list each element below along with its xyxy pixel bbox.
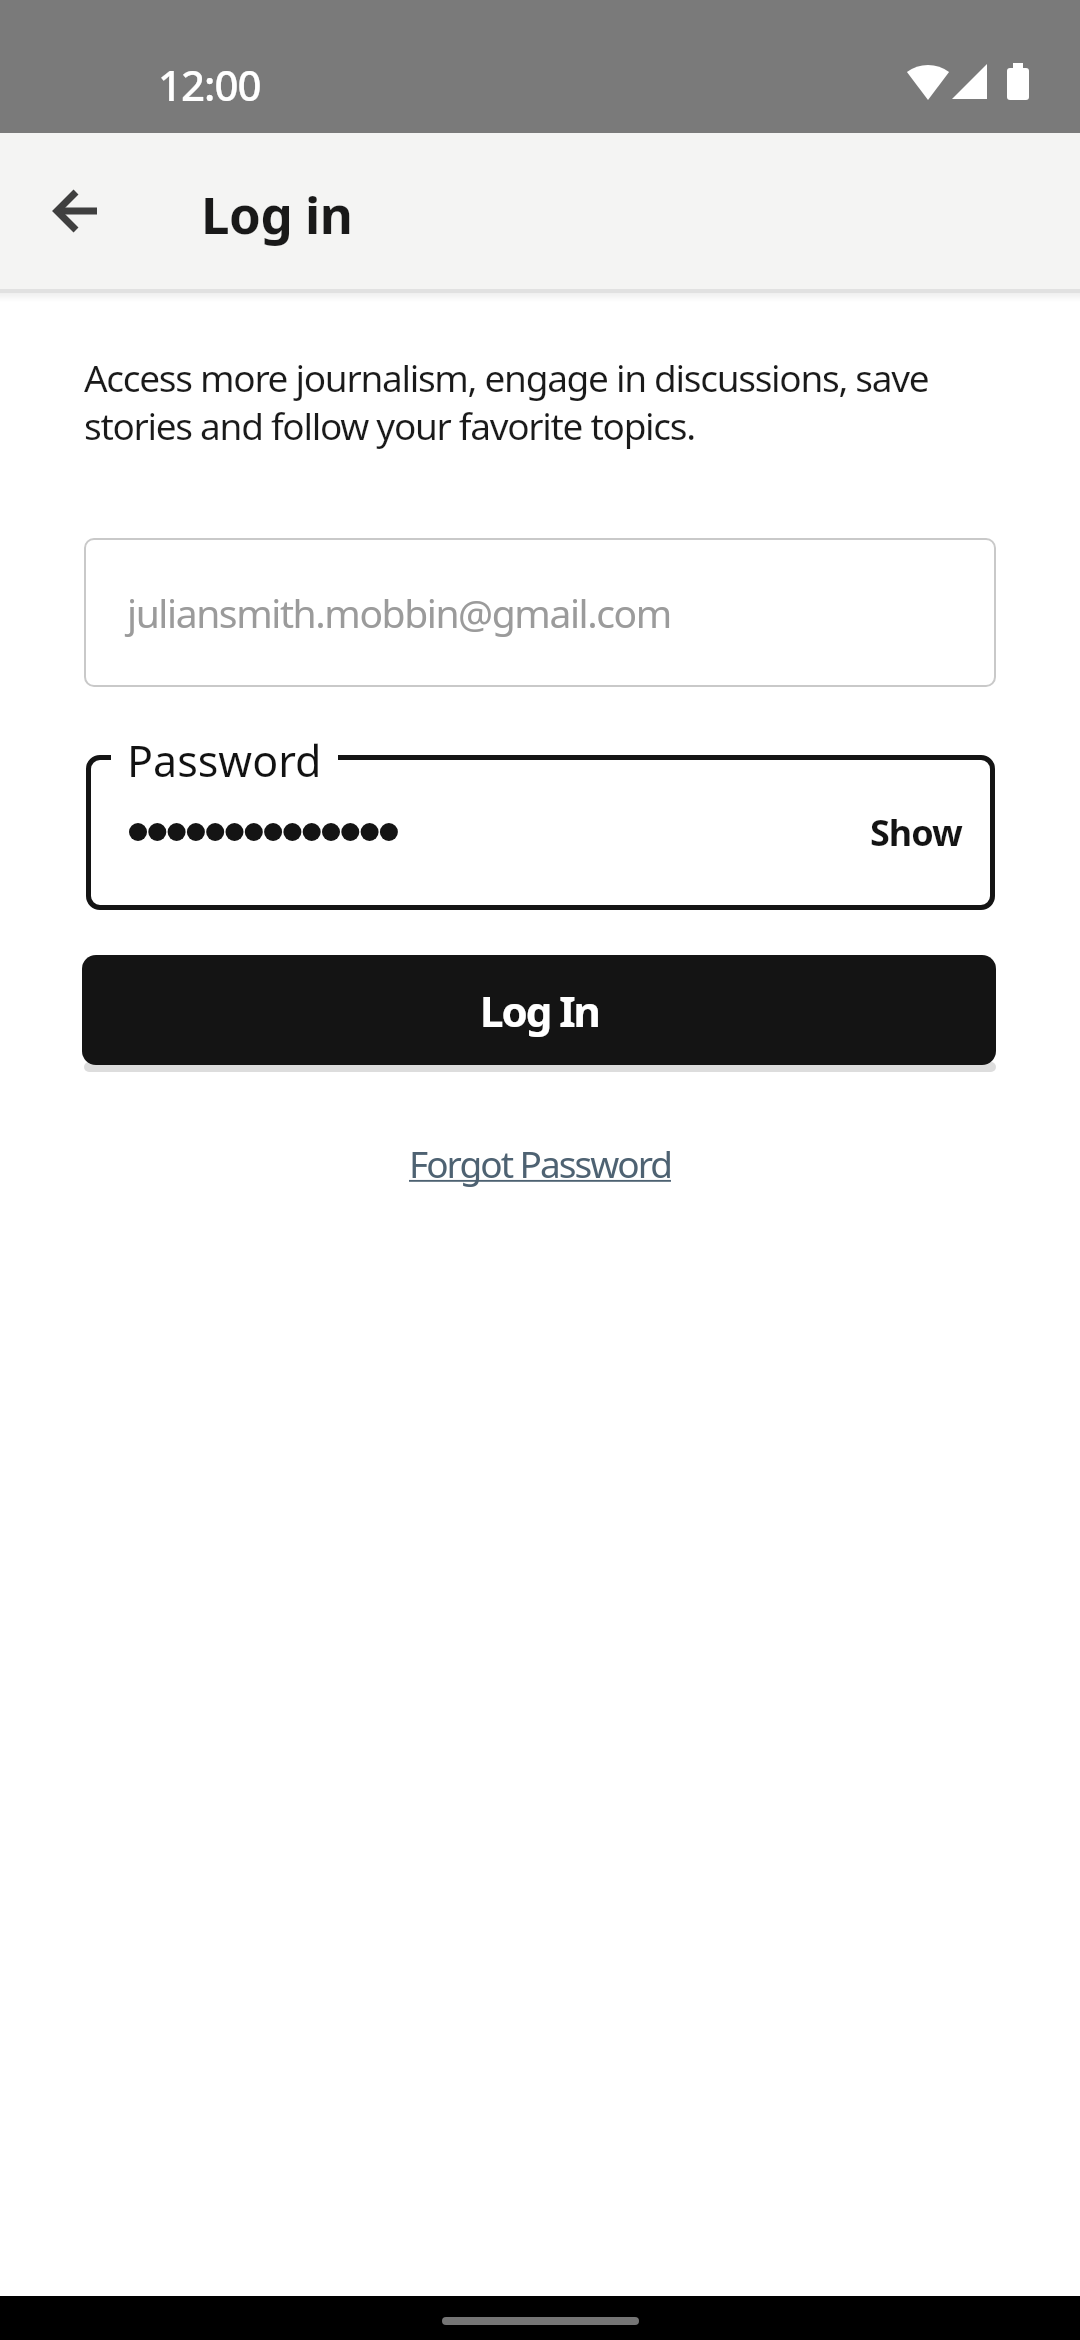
staticText: Show [870,808,962,857]
staticText: Access more journalism, engage in discus… [84,352,929,451]
staticText: Password [127,731,322,790]
button[interactable] [45,179,109,243]
button[interactable]: Forgot Password [409,1138,671,1188]
staticText: Log In [480,982,599,1039]
staticText: 12:00 [158,56,261,113]
button[interactable]: Show [86,755,995,910]
button[interactable]: juliansmith.mobbin@gmail.com [84,538,996,687]
button[interactable]: Log In [82,955,996,1065]
staticText: juliansmith.mobbin@gmail.com [127,586,671,639]
staticText: Log in [201,179,353,248]
